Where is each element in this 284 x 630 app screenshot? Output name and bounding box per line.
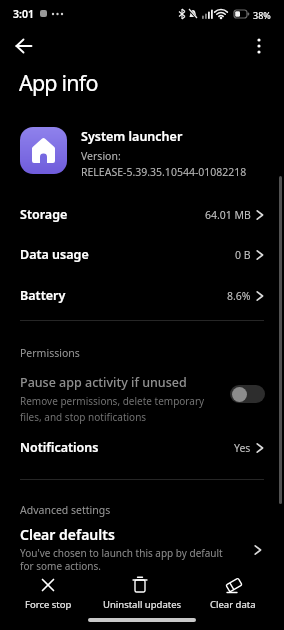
button[interactable]: Uninstall updates [96, 572, 184, 614]
staticText: Uninstall updates [103, 598, 182, 611]
button[interactable] [230, 385, 265, 403]
button[interactable] [246, 33, 272, 59]
button[interactable]: Clear data [192, 572, 276, 614]
button[interactable]: Pause app activity if unused [0, 366, 284, 422]
staticText: System launcher [81, 128, 183, 145]
button[interactable]: Notifications [0, 427, 284, 468]
staticText: Battery [20, 287, 66, 304]
button[interactable]: Data usage [0, 234, 284, 275]
staticText: Notifications [20, 439, 99, 456]
staticText: Yes [234, 441, 251, 455]
staticText: Clear data [210, 598, 256, 611]
staticText: Clear defaults [20, 525, 115, 544]
staticText: for some actions. [20, 559, 101, 573]
staticText: Force stop [25, 598, 72, 611]
staticText: RELEASE-5.39.35.10544-01082218 [81, 165, 247, 179]
staticText: 38% [253, 9, 271, 21]
staticText: Storage [20, 206, 68, 223]
button[interactable]: Force stop [8, 572, 88, 614]
staticText: 0 B [235, 248, 251, 262]
staticText: You've chosen to launch this app by defa… [20, 546, 223, 560]
staticText: Advanced settings [20, 503, 111, 517]
button[interactable]: Storage [0, 194, 284, 235]
button[interactable]: Clear defaults [0, 518, 284, 576]
staticText: Data usage [20, 246, 89, 263]
staticText: Permissions [20, 346, 80, 360]
staticText: Pause app activity if unused [20, 374, 187, 391]
staticText: 3:01 [13, 7, 34, 21]
staticText: Remove permissions, delete temporary [20, 394, 205, 408]
button[interactable]: Battery [0, 275, 284, 316]
staticText: 64.01 MB [205, 208, 251, 222]
staticText: files, and stop notifications [20, 410, 147, 424]
staticText: App info [19, 68, 98, 97]
staticText: Version: [81, 149, 121, 163]
button[interactable] [10, 32, 38, 60]
staticText: 8.6% [227, 289, 251, 303]
